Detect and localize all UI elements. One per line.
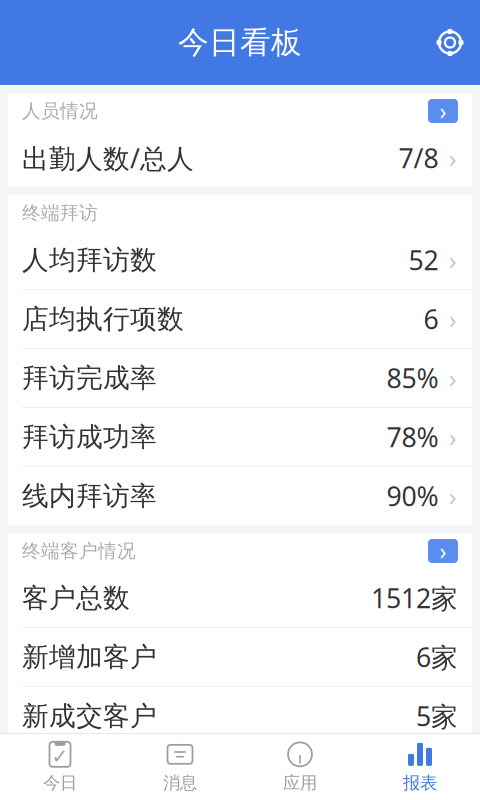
staticText: 6家	[416, 639, 458, 675]
staticText: ›	[449, 420, 457, 454]
button[interactable]: 新增加客户	[8, 628, 472, 686]
button[interactable]: 拜访成功率	[8, 408, 472, 466]
button[interactable]: 客户总数	[8, 569, 472, 627]
button[interactable]: 新成交客户	[8, 687, 472, 745]
button[interactable]: 应用	[240, 734, 360, 800]
staticText: ›	[439, 536, 446, 566]
staticText: 终端客户情况	[22, 539, 136, 562]
button[interactable]: 查看详情	[428, 99, 458, 123]
staticText: ›	[449, 361, 457, 395]
staticText: 报表	[403, 772, 437, 794]
staticText: 出勤人数/总人	[22, 140, 194, 176]
button[interactable]: 人均拜访数	[8, 231, 472, 289]
staticText: 终端拜访	[22, 201, 98, 224]
staticText: 人员情况	[22, 99, 98, 122]
staticText: 消息	[163, 772, 197, 794]
button[interactable]: 出勤人数/总人	[8, 129, 472, 187]
staticText: 85%	[387, 360, 439, 396]
staticText: 人均拜访数	[22, 244, 157, 276]
staticText: 拜访成功率	[22, 421, 157, 453]
staticText: 1512家	[371, 580, 458, 616]
button[interactable]: 店均执行项数	[8, 290, 472, 348]
button[interactable]: 查看详情	[428, 539, 458, 563]
staticText: 新增加客户	[22, 641, 157, 673]
staticText: ›	[439, 96, 446, 126]
button[interactable]: 设置	[420, 16, 480, 68]
staticText: 新成交客户	[22, 700, 157, 732]
staticText: 90%	[387, 478, 439, 514]
staticText: ›	[449, 479, 457, 513]
staticText: 店均执行项数	[22, 303, 184, 335]
button[interactable]: ✓	[0, 734, 120, 800]
staticText: 7/8	[399, 140, 439, 176]
staticText: 线内拜访率	[22, 480, 157, 512]
staticText: ›	[449, 302, 457, 336]
staticText: ›	[449, 243, 457, 277]
staticText: 今日看板	[178, 24, 302, 61]
staticText: 52	[409, 242, 439, 278]
button[interactable]: 拜访完成率	[8, 349, 472, 407]
button[interactable]: 线内拜访率	[8, 467, 472, 525]
staticText: ✓	[51, 745, 68, 768]
staticText: 今日	[43, 772, 77, 794]
staticText: 78%	[387, 419, 439, 455]
staticText: 6	[424, 301, 439, 337]
staticText: 5家	[416, 698, 458, 734]
staticText: ›	[449, 141, 457, 175]
staticText: 应用	[283, 772, 317, 794]
staticText: 客户总数	[22, 582, 130, 614]
staticText: 拜访完成率	[22, 362, 157, 394]
button[interactable]: 消息	[120, 734, 240, 800]
button[interactable]: 报表	[360, 734, 480, 800]
